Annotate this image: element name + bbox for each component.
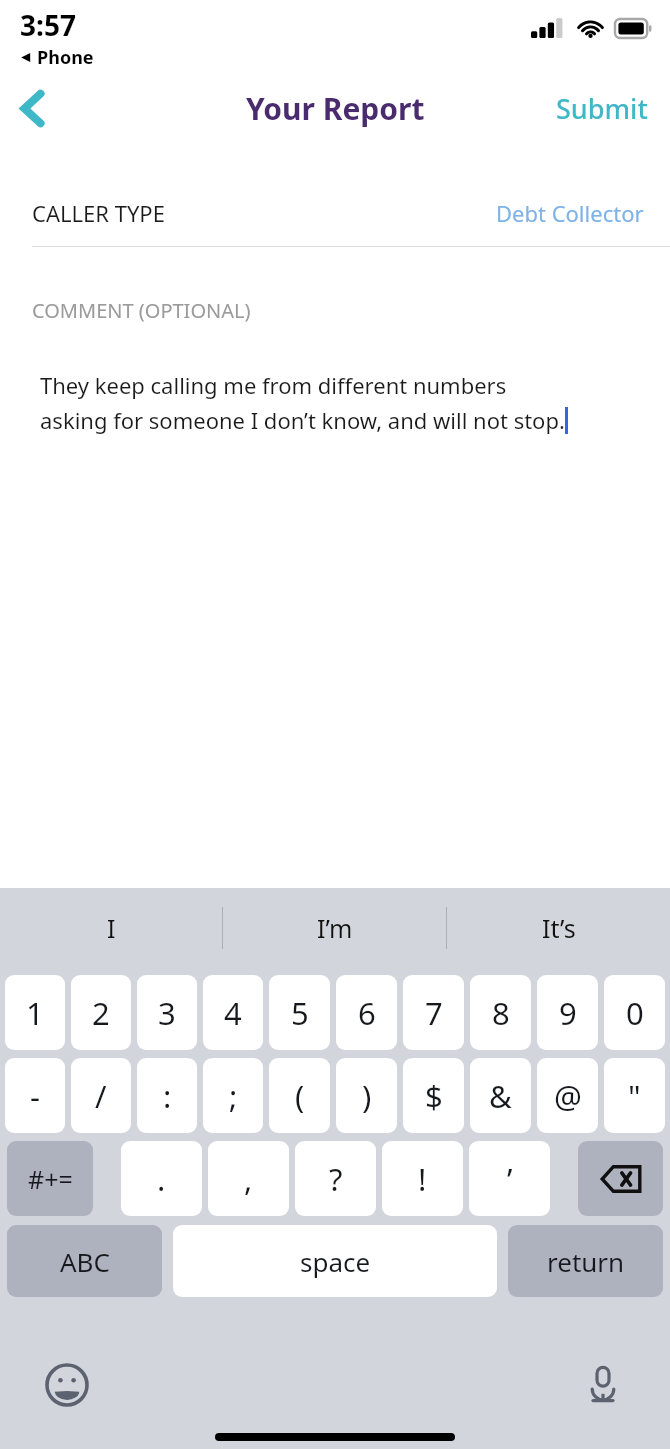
staticText: 3:57 [20,6,76,44]
staticText: 7 [425,992,443,1034]
button[interactable]: ! [382,1141,463,1216]
staticText: - [30,1075,40,1117]
staticText: . [157,1158,166,1200]
button[interactable]: ) [336,1058,397,1133]
staticText: ( [295,1075,305,1117]
staticText: 0 [626,992,644,1034]
staticText: Debt Collector [496,198,644,228]
button[interactable]: 9 [537,975,598,1050]
button[interactable]: ’ [469,1141,550,1216]
button[interactable]: 0 [604,975,665,1050]
button[interactable]: ( [269,1058,330,1133]
button[interactable]: 4 [203,975,263,1050]
button[interactable]: 3 [137,975,197,1050]
staticText: ; [229,1075,238,1117]
button[interactable]: / [71,1058,131,1133]
staticText: It’s [542,911,576,945]
button[interactable]: " [604,1058,665,1133]
button[interactable]: space [173,1225,497,1297]
staticText: 3 [158,992,176,1034]
staticText: 1 [26,992,44,1034]
staticText: asking for someone I don’t know, and wil… [40,405,565,435]
button[interactable]: 8 [470,975,531,1050]
staticText: & [489,1075,512,1117]
staticText: ’ [507,1158,513,1200]
staticText: ABC [60,1244,110,1279]
staticText: " [628,1075,641,1117]
button[interactable]: Dictate [576,1358,630,1412]
staticText: COMMENT (OPTIONAL) [32,297,251,324]
staticText: They keep calling me from different numb… [40,370,507,400]
staticText: ) [362,1075,372,1117]
staticText: CALLER TYPE [32,198,165,228]
staticText: , [244,1158,253,1200]
staticText: return [547,1244,625,1279]
button[interactable]: : [137,1058,197,1133]
staticText: ! [418,1158,427,1200]
button[interactable]: return [508,1225,663,1297]
button[interactable]: Back [0,76,64,140]
button[interactable]: CALLER TYPE [0,198,670,246]
button[interactable]: It’s [447,888,670,968]
staticText: @ [554,1075,582,1117]
staticText: 5 [291,992,309,1034]
button[interactable]: Submit [534,78,670,139]
button[interactable]: ABC [7,1225,162,1297]
button[interactable]: 2 [71,975,131,1050]
button[interactable]: $ [403,1058,464,1133]
staticText: 6 [358,992,376,1034]
staticText: Submit [556,90,648,127]
button[interactable]: Backspace [578,1141,663,1216]
staticText: Your Report [246,88,425,129]
staticText: / [95,1075,107,1117]
button[interactable]: & [470,1058,531,1133]
button[interactable]: , [208,1141,289,1216]
staticText: ? [329,1158,343,1200]
staticText: 8 [492,992,510,1034]
staticText: : [163,1075,172,1117]
button[interactable]: - [5,1058,65,1133]
staticText: space [300,1244,371,1279]
staticText: 2 [92,992,110,1034]
button[interactable]: 7 [403,975,464,1050]
staticText: Phone [37,45,94,70]
button[interactable]: ; [203,1058,263,1133]
staticText: I [107,911,116,945]
button[interactable]: 1 [5,975,65,1050]
button[interactable]: 6 [336,975,397,1050]
staticText: 9 [559,992,577,1034]
button[interactable]: ? [295,1141,376,1216]
button[interactable]: . [121,1141,202,1216]
button[interactable]: I’m [223,888,446,968]
button[interactable]: @ [537,1058,598,1133]
staticText: I’m [317,911,353,945]
button[interactable]: 5 [269,975,330,1050]
staticText: #+= [28,1162,73,1196]
button[interactable]: Emoji [40,1358,94,1412]
button[interactable]: #+= [7,1141,93,1216]
staticText: $ [425,1075,443,1117]
staticText: 4 [224,992,242,1034]
button[interactable]: I [0,888,222,968]
